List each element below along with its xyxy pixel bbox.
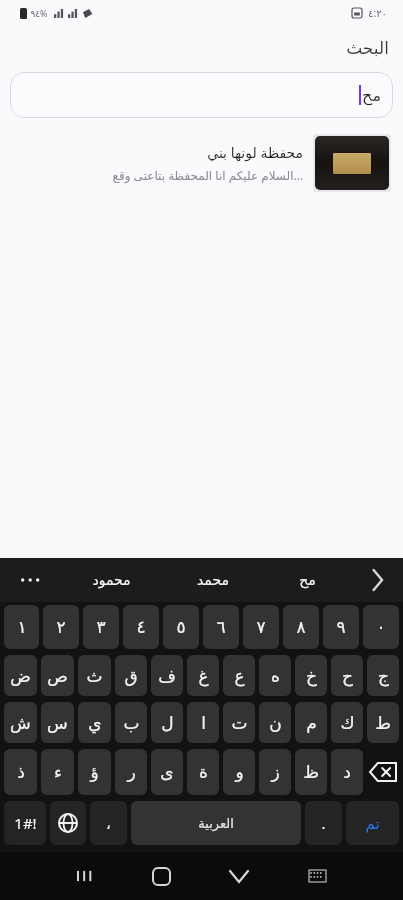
button[interactable]: More suggestions <box>0 558 60 602</box>
button[interactable]: ٥ <box>163 605 199 649</box>
button[interactable]: ٩ <box>323 605 359 649</box>
staticText: ز <box>271 762 280 782</box>
staticText: ه <box>271 666 280 686</box>
button[interactable]: Backspace <box>367 748 399 796</box>
button[interactable]: ذ <box>4 749 37 795</box>
button[interactable]: Switch keyboard <box>278 852 356 900</box>
button[interactable]: ش <box>4 702 37 743</box>
button[interactable]: ك <box>331 702 363 743</box>
button[interactable]: ه <box>259 655 291 696</box>
button[interactable]: 1#! <box>4 801 46 845</box>
staticText: ء <box>54 762 62 782</box>
staticText: محمد <box>197 572 229 588</box>
button[interactable]: ٣ <box>83 605 119 649</box>
staticText: ٦ <box>216 617 226 637</box>
staticText: محمود <box>92 572 131 588</box>
staticText: ١ <box>17 617 27 637</box>
button[interactable]: ف <box>151 655 183 696</box>
staticText: ٤:٢٠ <box>368 6 387 20</box>
button[interactable]: ظ <box>295 749 327 795</box>
button[interactable]: ص <box>41 655 74 696</box>
button[interactable]: Recents <box>46 852 123 900</box>
button[interactable]: العربية <box>131 801 301 845</box>
button[interactable]: ٠ <box>363 605 399 649</box>
button[interactable]: مح <box>10 72 393 118</box>
staticText: ض <box>10 666 31 686</box>
button[interactable]: غ <box>187 655 219 696</box>
staticText: ٥ <box>176 617 186 637</box>
button[interactable]: ء <box>41 749 74 795</box>
staticText: ذ <box>17 762 25 782</box>
staticText: ة <box>199 762 208 782</box>
staticText: ٧ <box>256 617 266 637</box>
button[interactable]: ؤ <box>78 749 111 795</box>
staticText: ش <box>10 713 31 733</box>
button[interactable]: ا <box>187 702 219 743</box>
button[interactable]: م <box>295 702 327 743</box>
button[interactable]: خ <box>295 655 327 696</box>
staticText: ٠ <box>376 617 386 637</box>
button[interactable]: ث <box>78 655 111 696</box>
staticText: ح <box>342 666 353 686</box>
staticText: السلام عليكم انا المحفظة بتاعتى وقع… <box>112 167 303 183</box>
button[interactable]: ٦ <box>203 605 239 649</box>
button[interactable]: محمد <box>162 558 264 602</box>
button[interactable]: ٤ <box>123 605 159 649</box>
button[interactable]: ن <box>259 702 291 743</box>
staticText: ٤ <box>136 617 146 637</box>
button[interactable]: ى <box>151 749 183 795</box>
button[interactable]: ي <box>78 702 111 743</box>
button[interactable]: Expand suggestions <box>351 558 403 602</box>
staticText: البحث <box>346 38 389 58</box>
button[interactable]: و <box>223 749 255 795</box>
staticText: ٨ <box>296 617 306 637</box>
staticText: محفظة لونها بني <box>207 143 303 162</box>
button[interactable]: Home <box>123 852 200 900</box>
staticText: مح <box>362 86 381 105</box>
button[interactable]: ز <box>259 749 291 795</box>
staticText: ث <box>86 666 103 686</box>
button[interactable]: ١ <box>4 605 39 649</box>
staticText: ط <box>375 713 391 733</box>
staticText: ٩٤% <box>30 7 48 19</box>
button[interactable]: ٢ <box>43 605 79 649</box>
staticText: مح <box>299 572 316 588</box>
button[interactable]: ٨ <box>283 605 319 649</box>
button[interactable]: تم <box>346 801 399 845</box>
button[interactable]: ع <box>223 655 255 696</box>
button[interactable]: س <box>41 702 74 743</box>
button[interactable]: ج <box>367 655 399 696</box>
staticText: ظ <box>303 762 319 782</box>
staticText: ب <box>123 713 140 733</box>
button[interactable]: ر <box>115 749 147 795</box>
staticText: ك <box>340 713 355 733</box>
button[interactable]: Hide keyboard <box>200 852 278 900</box>
staticText: خ <box>306 666 317 686</box>
button[interactable]: ، <box>90 801 127 845</box>
button[interactable]: Change language <box>50 801 86 845</box>
button[interactable]: مح <box>264 558 351 602</box>
staticText: ، <box>106 815 111 832</box>
staticText: ن <box>269 713 282 733</box>
button[interactable]: محمود <box>60 558 162 602</box>
staticText: ج <box>378 666 389 686</box>
staticText: ص <box>47 666 68 686</box>
staticText: س <box>47 713 68 733</box>
staticText: ف <box>158 666 176 686</box>
button[interactable]: د <box>331 749 363 795</box>
staticText: ي <box>88 713 102 733</box>
button[interactable]: محفظة لونها بني <box>0 128 403 198</box>
button[interactable]: ح <box>331 655 363 696</box>
staticText: ر <box>127 762 136 782</box>
button[interactable]: ٧ <box>243 605 279 649</box>
button[interactable]: ة <box>187 749 219 795</box>
staticText: ٢ <box>56 617 66 637</box>
button[interactable]: ض <box>4 655 37 696</box>
button[interactable]: ل <box>151 702 183 743</box>
button[interactable]: ط <box>367 702 399 743</box>
button[interactable]: ت <box>223 702 255 743</box>
button[interactable]: . <box>305 801 342 845</box>
staticText: ل <box>161 713 174 733</box>
button[interactable]: ق <box>115 655 147 696</box>
button[interactable]: ب <box>115 702 147 743</box>
